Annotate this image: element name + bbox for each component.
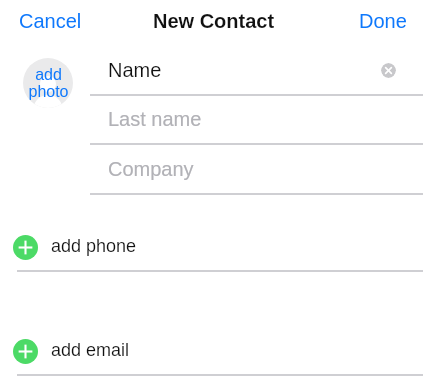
button[interactable]: Last name <box>0 95 423 145</box>
button[interactable]: Add photo <box>23 58 73 108</box>
staticText: add photo <box>28 66 69 100</box>
staticText: Done <box>359 10 407 32</box>
button[interactable]: Cancel <box>11 3 90 39</box>
staticText: Name <box>108 59 162 81</box>
staticText: add phone <box>51 236 137 256</box>
staticText: Cancel <box>19 10 82 32</box>
button[interactable]: add email <box>0 327 423 376</box>
button[interactable]: Clear text <box>381 63 396 78</box>
staticText: New Contact <box>153 10 275 32</box>
staticText: Last name <box>108 108 202 130</box>
staticText: add email <box>51 340 130 360</box>
button[interactable]: add phone <box>0 223 423 272</box>
button[interactable]: Company <box>0 145 423 195</box>
staticText: Company <box>108 158 194 180</box>
button[interactable]: Done <box>351 3 415 39</box>
button[interactable]: Name <box>0 46 423 96</box>
